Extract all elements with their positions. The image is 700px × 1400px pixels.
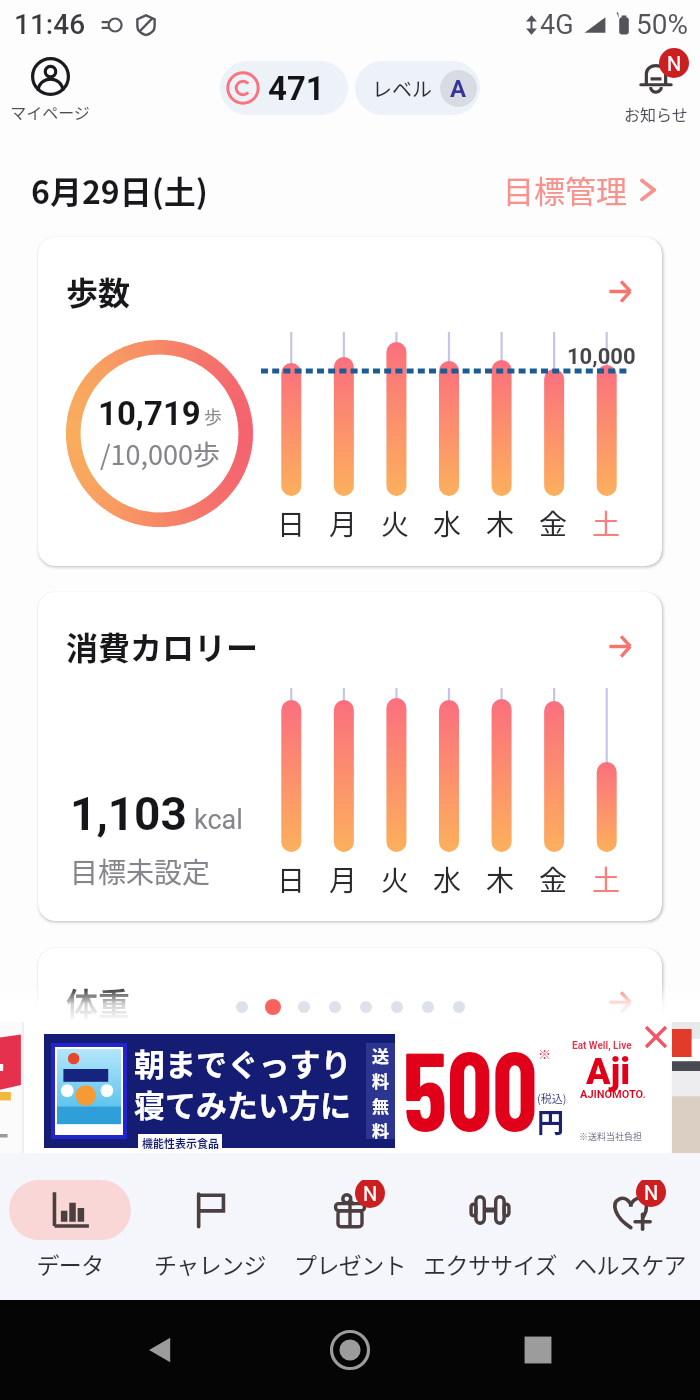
staticText: 目標未設定 — [70, 851, 211, 892]
staticText: 月 — [329, 503, 358, 544]
button[interactable]: お知らせ — [612, 56, 700, 125]
staticText: ヘルスケア — [560, 1247, 700, 1280]
staticText: 471 — [268, 69, 325, 108]
staticText: 金 — [539, 503, 568, 544]
staticText: 目標管理 — [503, 167, 627, 212]
staticText: 水 — [433, 503, 462, 544]
staticText: 金 — [539, 859, 568, 900]
button[interactable]: エクササイズ — [420, 1153, 560, 1300]
staticText: プレゼント — [280, 1247, 420, 1280]
button[interactable]: Recents — [514, 1326, 562, 1374]
staticText: データ — [0, 1247, 140, 1280]
staticText: 料 — [372, 1068, 389, 1093]
button[interactable]: マイページ — [4, 57, 96, 123]
button[interactable]: チャレンジ — [140, 1153, 280, 1300]
staticText: 日 — [277, 503, 306, 544]
staticText: 月 — [329, 859, 358, 900]
staticText: 日 — [277, 859, 306, 900]
staticText: チャレンジ — [140, 1247, 280, 1280]
button[interactable]: 目標管理 — [499, 163, 666, 216]
button[interactable]: 体重の詳細 — [603, 985, 637, 1019]
staticText: A — [450, 75, 467, 103]
staticText: 無 — [372, 1093, 389, 1118]
staticText: お知らせ — [624, 102, 688, 125]
staticText: Eat Well, Live — [572, 1040, 632, 1052]
button[interactable]: 消費カロリー — [38, 592, 662, 921]
staticText: /10,000歩 — [100, 434, 221, 473]
button[interactable]: 471 — [220, 61, 348, 115]
staticText: 500 — [403, 1021, 538, 1153]
staticText: 火 — [381, 859, 410, 900]
button[interactable]: Back — [138, 1326, 186, 1374]
button[interactable]: N — [280, 1153, 420, 1300]
staticText: 11:46 — [14, 8, 86, 41]
staticText: 歩 — [204, 403, 222, 429]
staticText: 10,719 — [98, 394, 201, 433]
button[interactable]: 朝までぐっすり — [24, 1022, 670, 1162]
staticText: N — [667, 52, 682, 75]
staticText: 水 — [433, 859, 462, 900]
staticText: 木 — [486, 859, 515, 900]
staticText: 体重 — [66, 979, 131, 1025]
staticText: 50% — [636, 8, 688, 41]
staticText: Aji — [586, 1051, 631, 1093]
button[interactable]: Home — [324, 1324, 376, 1376]
staticText: N — [644, 1181, 659, 1204]
staticText: N — [363, 1182, 378, 1205]
staticText: 土 — [592, 859, 621, 900]
button[interactable]: 歩数の詳細 — [603, 274, 637, 308]
staticText: 土 — [592, 503, 621, 544]
staticText: ※送料当社負担 — [579, 1130, 643, 1143]
staticText: エクササイズ — [420, 1247, 560, 1280]
staticText: 朝までぐっすり — [134, 1040, 352, 1085]
staticText: 6月29日(土) — [31, 167, 208, 213]
staticText: 円 — [537, 1102, 564, 1141]
staticText: 1,103 — [70, 787, 187, 841]
staticText: AJINOMOTO. — [580, 1088, 646, 1101]
button[interactable]: データ — [0, 1153, 140, 1300]
staticText: 送 — [372, 1043, 389, 1068]
staticText: マイページ — [10, 100, 90, 123]
staticText: kcal — [194, 804, 243, 836]
staticText: 火 — [381, 503, 410, 544]
staticText: 木 — [486, 503, 515, 544]
button[interactable]: 体重 — [38, 948, 662, 1148]
staticText: 消費カロリー — [66, 623, 259, 669]
button[interactable]: レベル — [355, 61, 480, 115]
staticText: 4G — [540, 9, 574, 41]
button[interactable]: 歩数 — [38, 237, 662, 566]
staticText: 料 — [372, 1118, 389, 1139]
button[interactable]: 広告を閉じる — [641, 1022, 671, 1052]
staticText: レベル — [372, 74, 432, 103]
button[interactable]: N — [560, 1153, 700, 1300]
staticText: 機能性表示食品 — [142, 1135, 219, 1151]
staticText: 寝てみたい方に — [134, 1081, 351, 1126]
staticText: ※ — [538, 1044, 552, 1063]
staticText: 10,000 — [567, 344, 636, 370]
staticText: 歩数 — [66, 268, 131, 314]
staticText: (税込) — [537, 1090, 567, 1106]
button[interactable]: 消費カロリーの詳細 — [603, 629, 637, 663]
